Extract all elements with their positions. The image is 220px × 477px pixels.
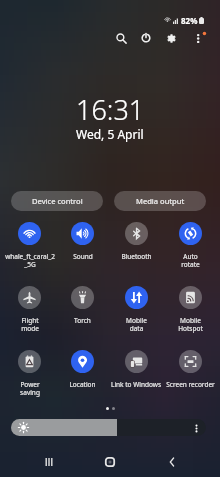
staticText: Power saving — [20, 380, 40, 397]
button[interactable]: Recents — [38, 451, 60, 473]
button[interactable]: Location — [56, 350, 109, 389]
staticText: Wed, 5 April — [76, 126, 144, 142]
button[interactable]: Mobile data — [109, 286, 163, 333]
staticText: Auto rotate — [181, 252, 200, 269]
staticText: 16:31 — [76, 91, 145, 128]
staticText: whale_ft_caral_2 _5G — [5, 252, 55, 269]
button[interactable]: Bluetooth — [109, 222, 163, 261]
button[interactable]: More options — [188, 27, 210, 49]
button[interactable]: Device control — [11, 191, 103, 211]
button[interactable]: Home — [99, 451, 121, 473]
button[interactable]: Screen recorder — [163, 350, 217, 389]
button[interactable]: Link to Windows — [109, 350, 163, 389]
staticText: Screen recorder — [166, 380, 215, 389]
button[interactable]: Sound — [56, 222, 109, 261]
button[interactable]: Brightness — [11, 419, 206, 436]
button[interactable]: Auto rotate — [163, 222, 217, 269]
staticText: Link to Windows — [111, 380, 161, 389]
button[interactable]: Torch — [56, 286, 109, 325]
staticText: Mobile Hotspot — [178, 316, 203, 333]
staticText: Device control — [32, 196, 83, 206]
staticText: Sound — [73, 252, 93, 261]
button[interactable]: Search — [110, 27, 132, 49]
staticText: Flight mode — [21, 316, 39, 333]
button[interactable]: Settings — [160, 27, 182, 49]
staticText: Mobile data — [126, 316, 147, 333]
button[interactable]: Flight mode — [3, 286, 56, 333]
staticText: Media output — [136, 196, 185, 206]
button[interactable]: Back — [161, 451, 183, 473]
staticText: Torch — [74, 316, 91, 325]
button[interactable]: Power saving — [3, 350, 56, 397]
button[interactable]: Media output — [114, 191, 206, 211]
button[interactable]: Mobile Hotspot — [163, 286, 217, 333]
staticText: 82% — [181, 15, 198, 26]
button[interactable]: whale_ft_caral_2 _5G — [3, 222, 56, 269]
staticText: Location — [69, 380, 96, 389]
button[interactable]: Power — [135, 27, 157, 49]
staticText: Bluetooth — [121, 252, 152, 261]
